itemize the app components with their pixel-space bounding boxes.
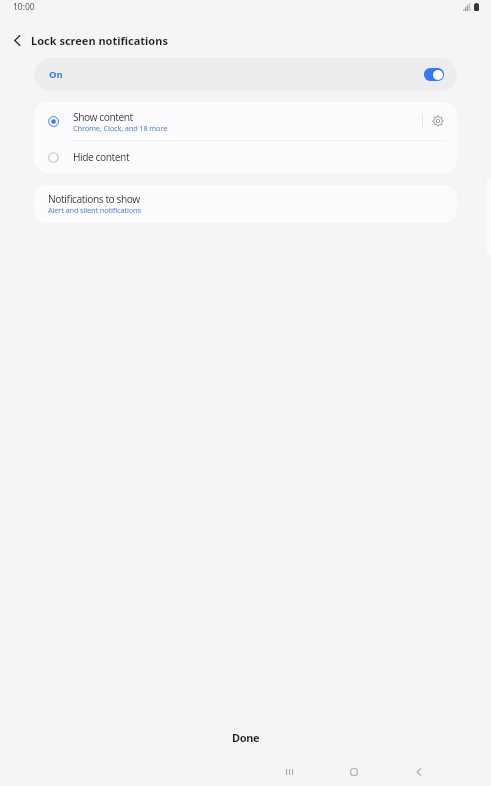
staticText: Chrome, Clock, and 18 more xyxy=(73,123,168,133)
button[interactable]: Notification settings xyxy=(423,102,457,140)
staticText: Hide content xyxy=(73,150,130,164)
staticText: Alert and silent notifications xyxy=(48,205,141,215)
button[interactable]: Back xyxy=(0,24,32,56)
button[interactable]: Back xyxy=(386,757,451,786)
button[interactable]: Notifications to show xyxy=(34,185,457,223)
button[interactable]: Done xyxy=(0,717,491,757)
staticText: On xyxy=(49,68,63,81)
staticText: Notifications to show xyxy=(48,192,140,206)
staticText: 10:00 xyxy=(13,1,35,13)
staticText: Done xyxy=(232,730,260,745)
button[interactable]: Hide content xyxy=(34,141,457,173)
button[interactable]: Recents xyxy=(256,757,321,786)
button[interactable]: On xyxy=(34,58,457,91)
button[interactable]: Show content xyxy=(34,102,457,140)
button[interactable]: Home xyxy=(321,757,386,786)
staticText: Show content xyxy=(73,110,133,124)
staticText: Lock screen notifications xyxy=(31,33,168,48)
